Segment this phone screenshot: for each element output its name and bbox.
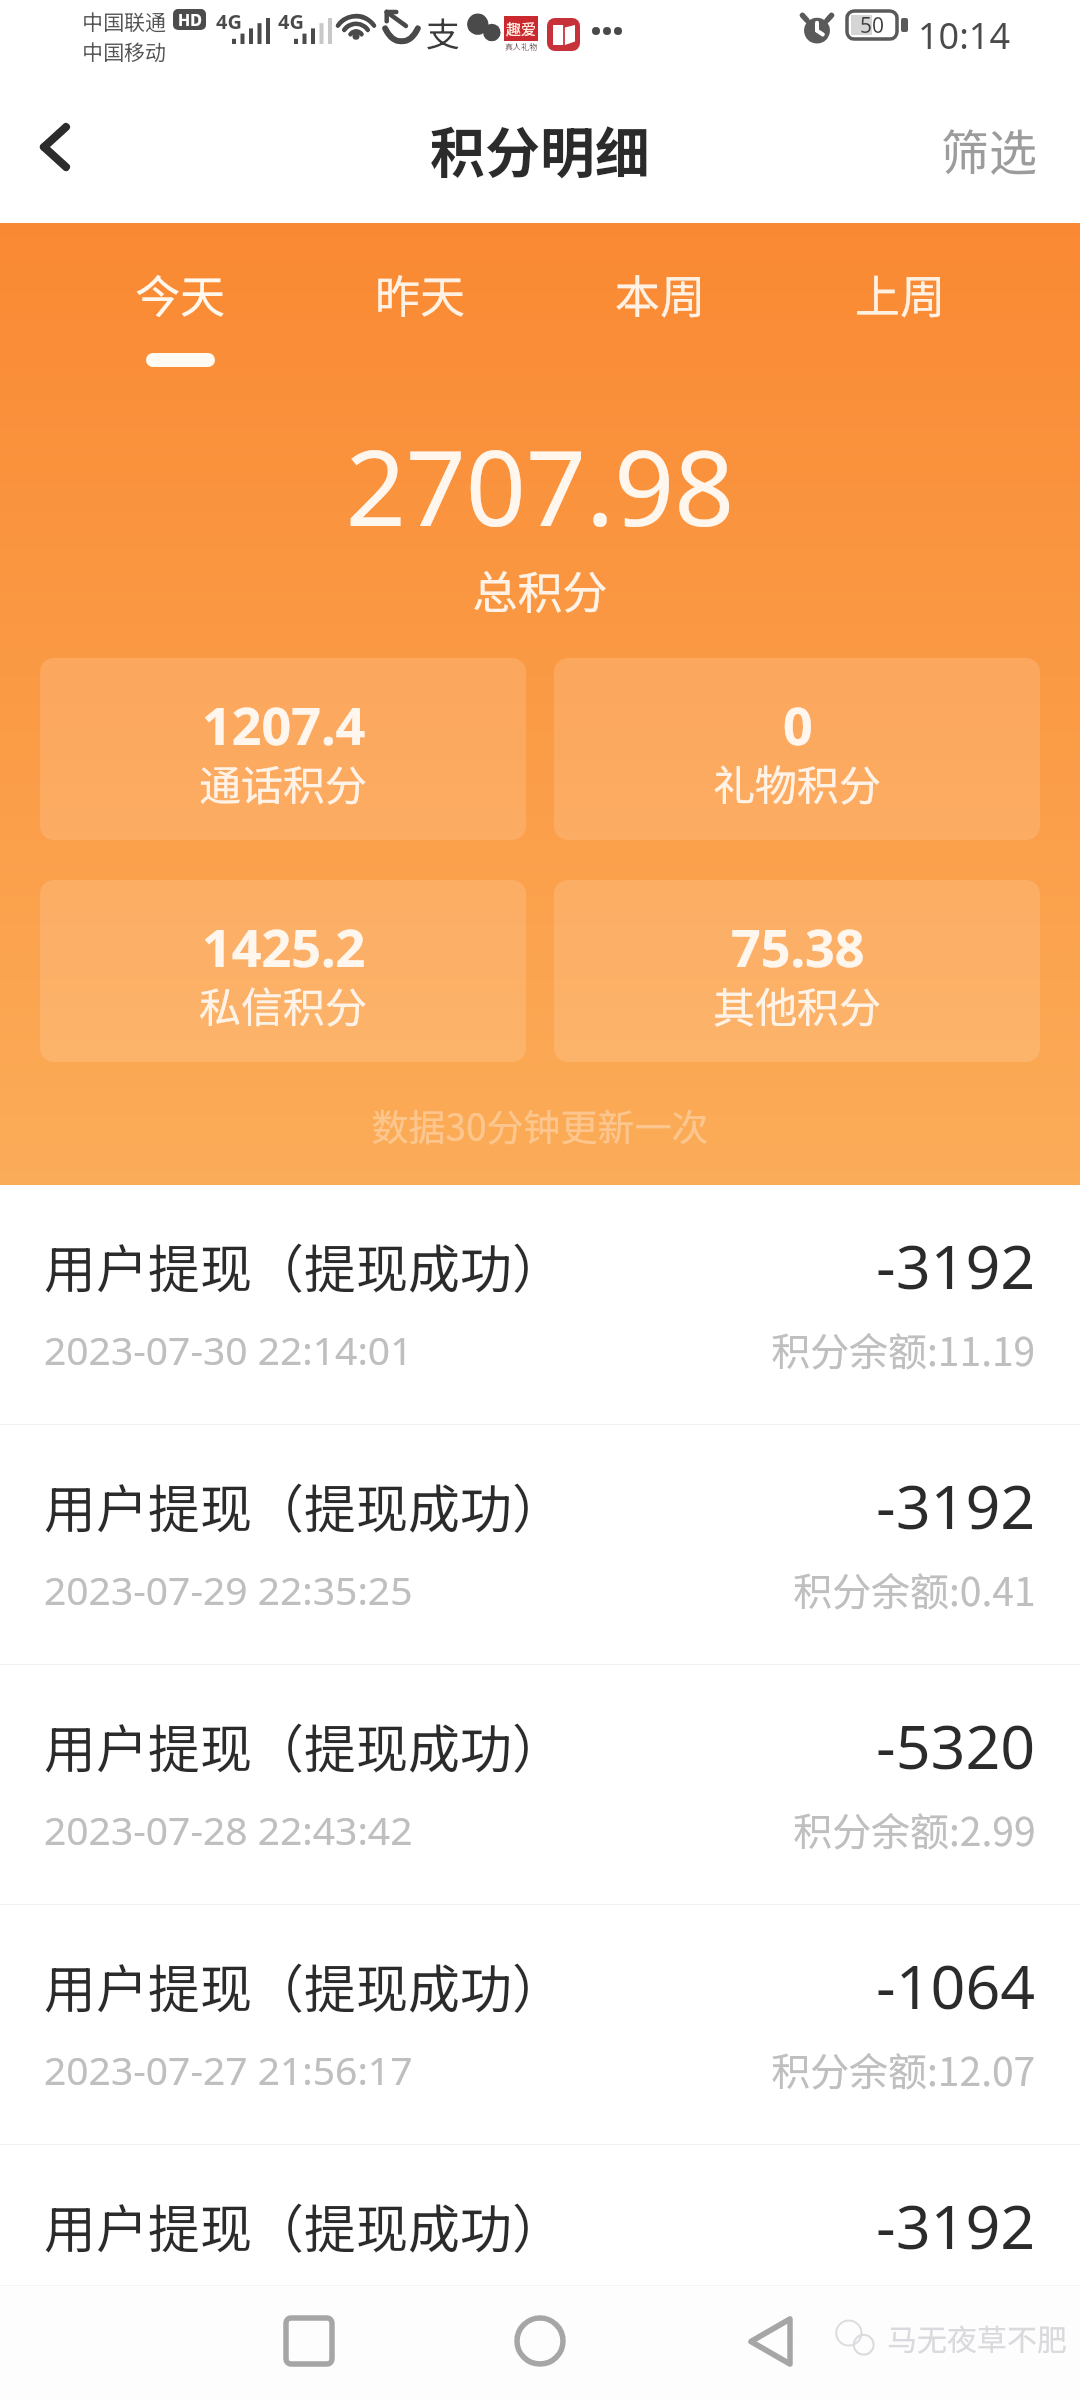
staticText: 中国移动 bbox=[82, 36, 166, 66]
staticText: 1207.4 bbox=[202, 689, 366, 760]
staticText: 筛选 bbox=[941, 114, 1038, 184]
button[interactable]: 用户提现（提现成功） bbox=[0, 1905, 1080, 2144]
staticText: 0 bbox=[783, 689, 813, 760]
staticText: 2023-07-29 22:35:25 bbox=[44, 1563, 413, 1616]
staticText: HD bbox=[178, 9, 202, 30]
staticText: 私信积分 bbox=[199, 974, 368, 1035]
staticText: 用户提现（提现成功） bbox=[44, 1468, 565, 1543]
staticText: 今天 bbox=[135, 261, 226, 326]
staticText: 趣爱 bbox=[506, 18, 537, 40]
button[interactable]: Home bbox=[490, 2291, 590, 2391]
button[interactable]: 75.38 bbox=[554, 880, 1040, 1062]
staticText: 2023-07-27 21:56:17 bbox=[44, 2043, 413, 2096]
staticText: 用户提现（提现成功） bbox=[44, 1708, 565, 1783]
button[interactable]: 今天 bbox=[60, 261, 300, 367]
staticText: 50 bbox=[860, 11, 885, 39]
staticText: 支 bbox=[426, 8, 460, 57]
staticText: 2023-07-28 22:43:42 bbox=[44, 1803, 413, 1856]
staticText: 4G bbox=[278, 8, 304, 35]
staticText: 上周 bbox=[855, 261, 946, 326]
staticText: 中国联通 bbox=[82, 6, 166, 36]
button[interactable]: 本周 bbox=[540, 261, 780, 353]
staticText: 用户提现（提现成功） bbox=[44, 2188, 565, 2263]
staticText: 马无夜草不肥 bbox=[887, 2316, 1067, 2359]
staticText: 75.38 bbox=[731, 911, 865, 982]
staticText: 积分明细 bbox=[430, 109, 651, 189]
staticText: 用户提现（提现成功） bbox=[44, 1228, 565, 1303]
button[interactable]: 上周 bbox=[780, 261, 1020, 353]
staticText: 2023-07-30 22:14:01 bbox=[44, 1323, 413, 1376]
staticText: -3192 bbox=[876, 1224, 1036, 1307]
staticText: -3192 bbox=[876, 1464, 1036, 1547]
button[interactable]: 0 bbox=[554, 658, 1040, 840]
staticText: 2023-07-26 21:30:11 bbox=[44, 2283, 413, 2336]
staticText: 礼物积分 bbox=[713, 752, 882, 813]
button[interactable]: 用户提现（提现成功） bbox=[0, 1665, 1080, 1904]
button[interactable]: 1207.4 bbox=[40, 658, 526, 840]
staticText: -1064 bbox=[876, 1944, 1036, 2027]
staticText: 数据30分钟更新一次 bbox=[0, 1098, 1080, 1152]
staticText: -5320 bbox=[876, 1704, 1036, 1787]
button[interactable]: 筛选 bbox=[921, 94, 1080, 204]
button[interactable]: 用户提现（提现成功） bbox=[0, 1425, 1080, 1664]
staticText: 积分余额:0.41 bbox=[793, 1561, 1036, 1617]
button[interactable]: Recents bbox=[259, 2291, 359, 2391]
staticText: 本周 bbox=[615, 261, 706, 326]
staticText: 1425.2 bbox=[202, 911, 366, 982]
button[interactable]: 昨天 bbox=[300, 261, 540, 353]
staticText: 2707.98 bbox=[0, 414, 1080, 557]
staticText: 积分余额:5.22 bbox=[793, 2281, 1036, 2337]
staticText: 通话积分 bbox=[199, 752, 368, 813]
button[interactable]: Back bbox=[720, 2291, 820, 2391]
button[interactable]: Back bbox=[16, 104, 106, 194]
staticText: 总积分 bbox=[0, 557, 1080, 622]
staticText: 4G bbox=[216, 8, 242, 35]
button[interactable]: 用户提现（提现成功） bbox=[0, 2145, 1080, 2384]
staticText: 积分余额:12.07 bbox=[771, 2041, 1036, 2097]
staticText: 其他积分 bbox=[713, 974, 882, 1035]
staticText: 10:14 bbox=[918, 11, 1011, 60]
staticText: 昨天 bbox=[375, 261, 466, 326]
staticText: 积分余额:2.99 bbox=[793, 1801, 1036, 1857]
staticText: 积分余额:11.19 bbox=[771, 1321, 1036, 1377]
button[interactable]: 用户提现（提现成功） bbox=[0, 1185, 1080, 1424]
staticText: -3192 bbox=[876, 2184, 1036, 2267]
staticText: 用户提现（提现成功） bbox=[44, 1948, 565, 2023]
staticText: 真人礼物 bbox=[505, 41, 537, 53]
button[interactable]: 1425.2 bbox=[40, 880, 526, 1062]
